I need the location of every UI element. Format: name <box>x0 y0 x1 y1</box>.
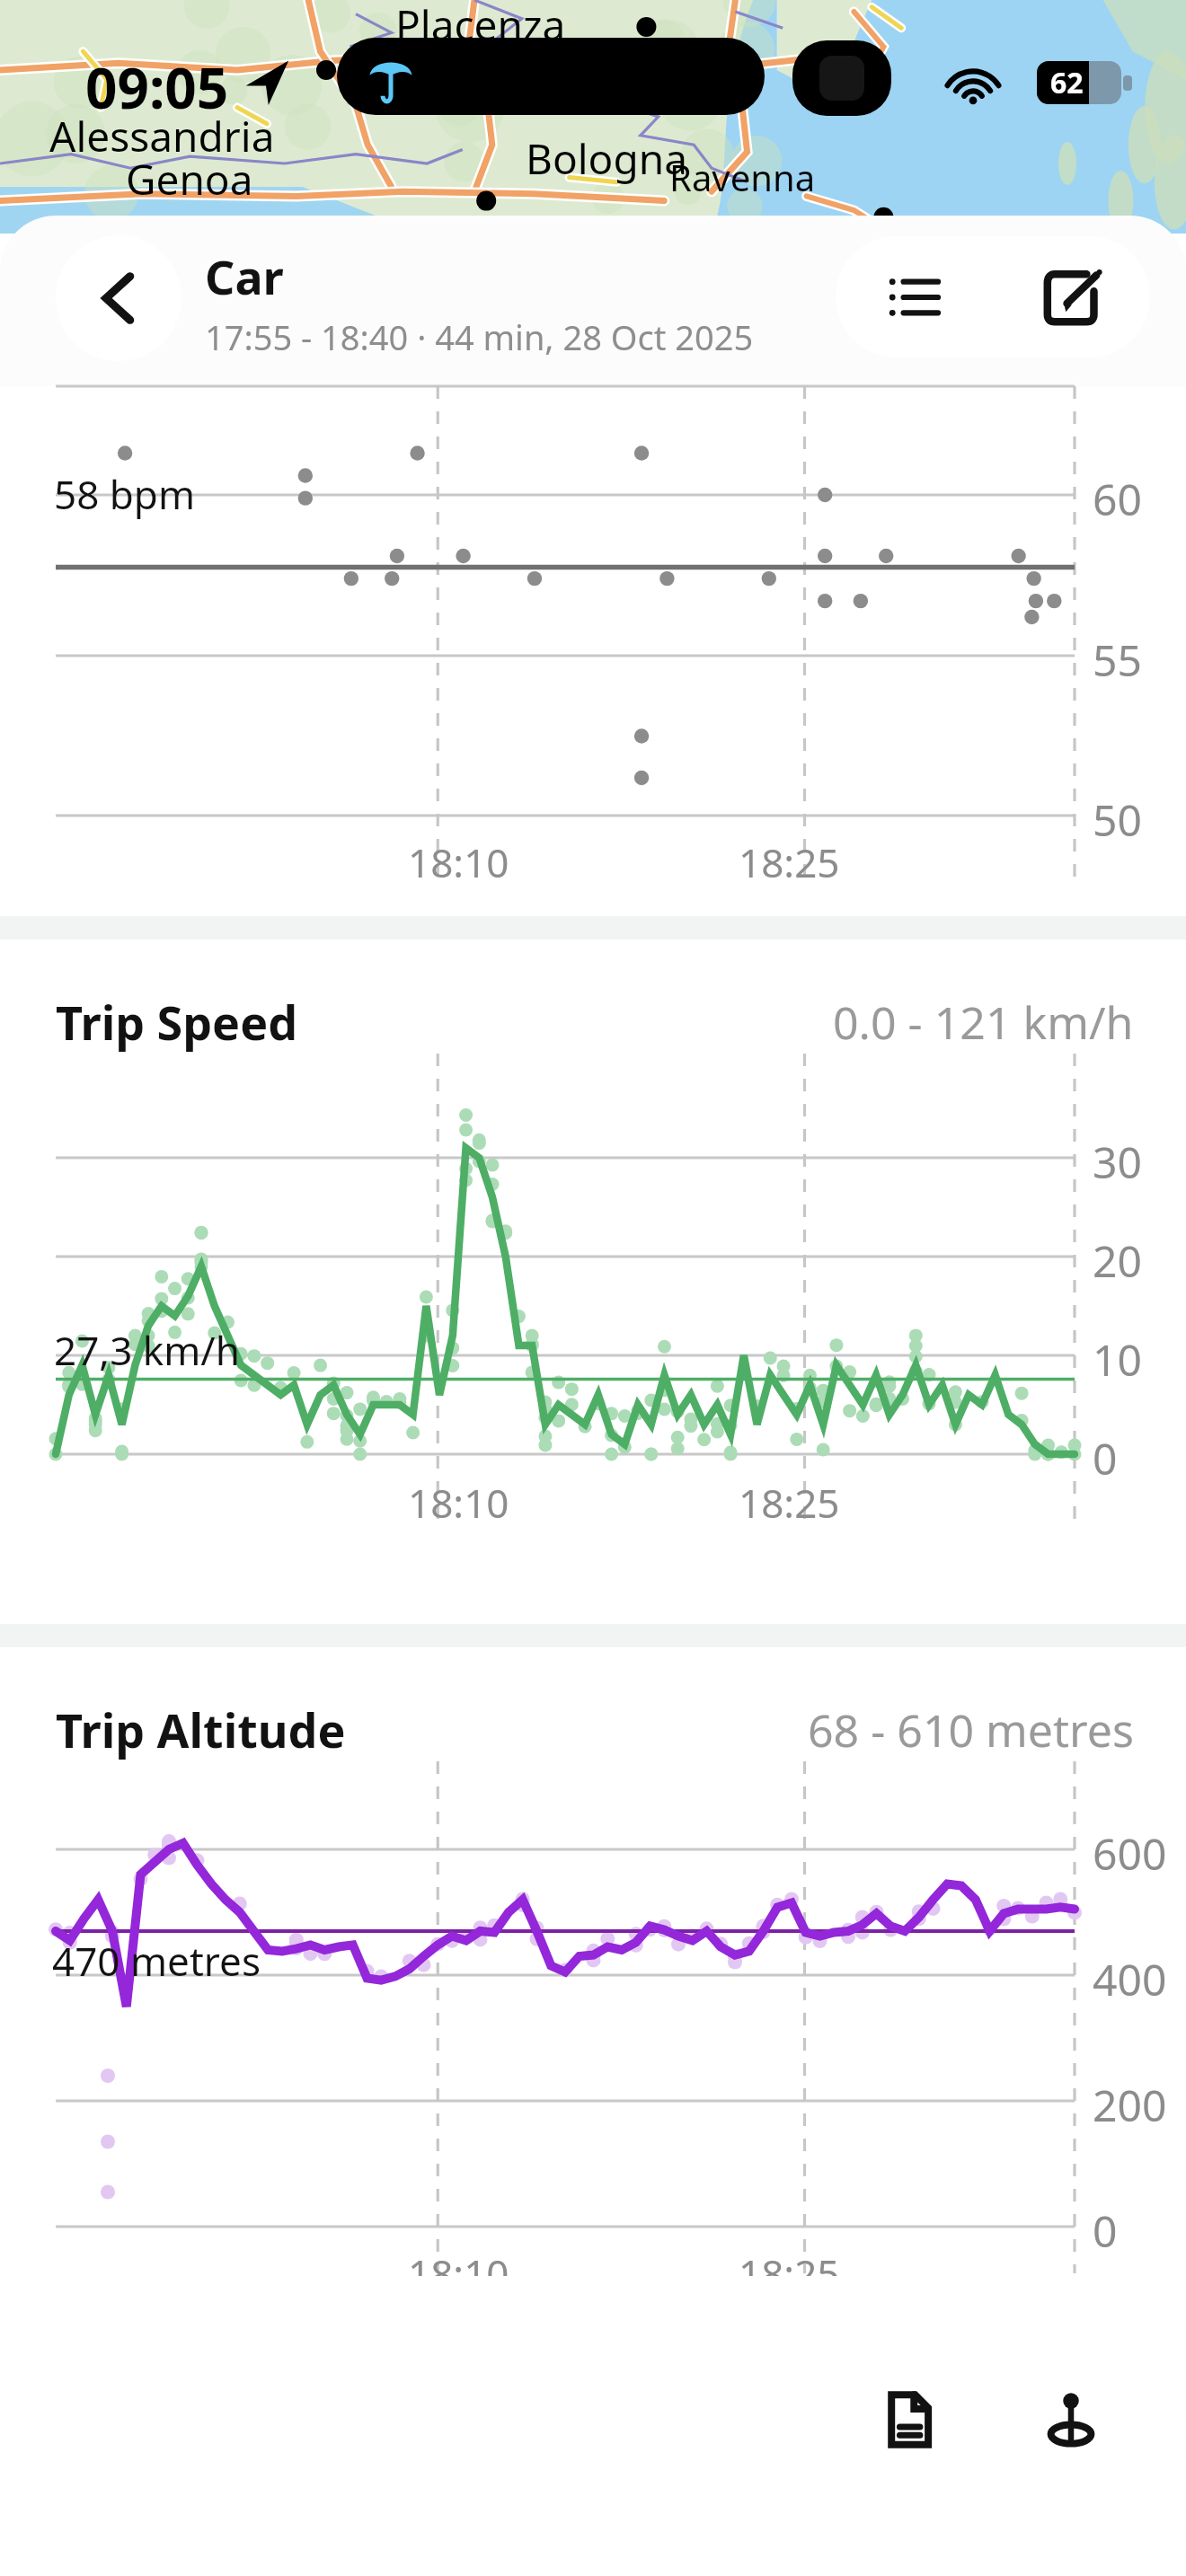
staticText: 0 <box>1093 2201 1118 2260</box>
staticText: Bologna <box>526 130 687 187</box>
staticText: 600 <box>1093 1824 1167 1883</box>
button[interactable]: List <box>836 236 993 357</box>
button[interactable]: Edit <box>993 236 1150 357</box>
staticText: 30 <box>1093 1133 1142 1191</box>
staticText: 20 <box>1093 1231 1142 1290</box>
staticText: 18:10 <box>408 2246 509 2300</box>
staticText: 55 <box>1093 631 1142 689</box>
staticText: 18:25 <box>739 1476 840 1530</box>
staticText: 09:05 <box>85 49 229 125</box>
other: Wi-Fi <box>947 56 999 108</box>
staticText: 0 <box>1093 1429 1118 1487</box>
staticText: 18:25 <box>739 2246 840 2300</box>
button[interactable]: Back <box>56 235 181 361</box>
staticText: 200 <box>1093 2076 1167 2134</box>
staticText: 58 bpm <box>54 467 196 521</box>
staticText: 68 - 610 metres <box>808 1699 1134 1760</box>
staticText: 18:10 <box>408 835 509 889</box>
button[interactable]: Notes <box>828 2353 990 2486</box>
staticText: 18:25 <box>739 835 840 889</box>
staticText: 18:10 <box>408 1476 509 1530</box>
staticText: 400 <box>1093 1950 1167 2008</box>
staticText: 17:55 - 18:40 · 44 min, 28 Oct 2025 <box>205 313 754 360</box>
staticText: 27,3 km/h <box>54 1323 240 1377</box>
staticText: Ravenna <box>669 153 816 201</box>
staticText: Placenza <box>395 0 566 53</box>
staticText: 50 <box>1093 790 1142 849</box>
staticText: 0.0 - 121 km/h <box>833 992 1134 1053</box>
staticText: Trip Speed <box>56 990 298 1054</box>
staticText: Alessandria <box>49 108 275 164</box>
staticText: 470 metres <box>52 1934 261 1988</box>
staticText: 62 <box>1050 63 1084 102</box>
staticText: Trip Altitude <box>56 1698 346 1761</box>
staticText: 10 <box>1093 1330 1142 1389</box>
staticText: Genoa <box>126 151 253 207</box>
button[interactable]: Show on map <box>990 2353 1152 2486</box>
staticText: Car <box>205 244 284 308</box>
staticText: 60 <box>1093 470 1142 528</box>
